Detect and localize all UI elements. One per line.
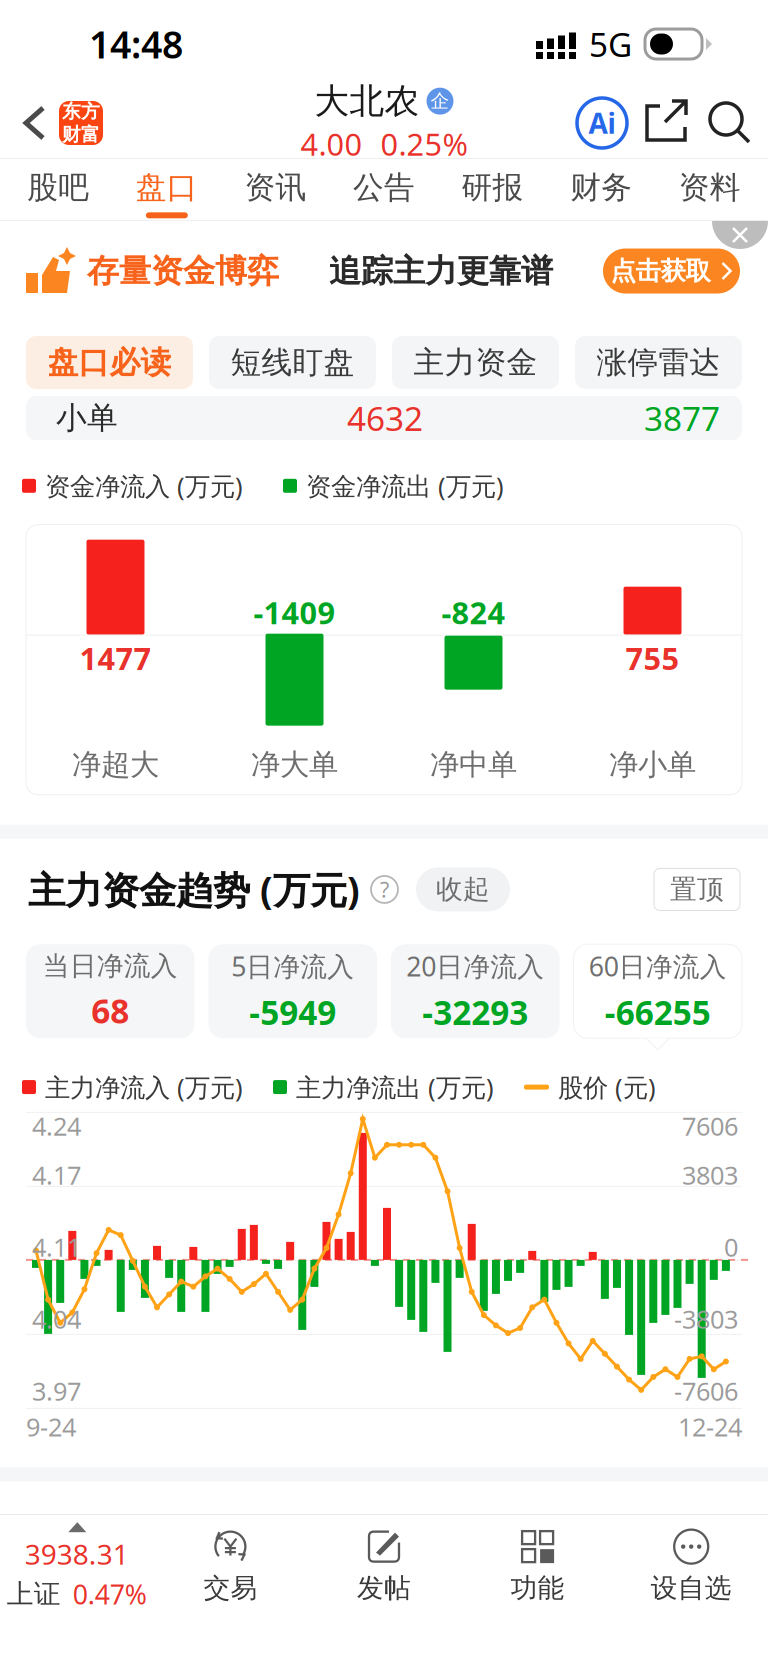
staticText: 5日净流入	[231, 948, 354, 984]
staticText: 股吧	[27, 169, 89, 206]
staticText: 上证	[7, 1578, 61, 1610]
staticText: -7606	[674, 1374, 738, 1408]
staticText: 0	[724, 1230, 738, 1264]
staticText: 盘口必读	[47, 344, 171, 381]
staticText: 9-24	[26, 1410, 76, 1443]
staticText: 财务	[570, 169, 632, 206]
button[interactable]: 短线盯盘	[209, 336, 376, 389]
staticText: 3877	[644, 396, 720, 440]
staticText: 4.04	[32, 1302, 81, 1336]
staticText: 小单	[56, 399, 118, 437]
staticText: 净中单	[430, 747, 517, 783]
staticText: 股价 (元)	[558, 1070, 656, 1104]
staticText: 4632	[347, 396, 423, 440]
button[interactable]: East Money	[59, 101, 103, 145]
staticText: 短线盯盘	[230, 344, 354, 381]
staticText: 0.25%	[380, 123, 467, 164]
staticText: 设自选	[651, 1572, 732, 1604]
staticText: 4.11	[32, 1230, 81, 1264]
staticText: 0.47%	[73, 1576, 147, 1612]
staticText: 7606	[682, 1109, 738, 1143]
staticText: 净大单	[251, 747, 338, 783]
button[interactable]: 涨停雷达	[575, 336, 742, 389]
staticText: -32293	[422, 990, 528, 1034]
staticText: ?	[380, 875, 389, 904]
staticText: -5949	[249, 990, 336, 1034]
button[interactable]: Share	[634, 88, 698, 158]
staticText: 主力资金	[413, 344, 537, 381]
staticText: Ai	[588, 104, 615, 142]
button[interactable]: 设自选	[614, 1515, 768, 1619]
staticText: -3803	[674, 1302, 738, 1336]
button[interactable]: Back	[0, 88, 59, 158]
button[interactable]: 功能	[461, 1515, 614, 1619]
button[interactable]: 财务	[547, 159, 655, 220]
staticText: 3.97	[32, 1374, 81, 1408]
button[interactable]: 研报	[438, 159, 547, 220]
button[interactable]: 5日净流入	[208, 944, 377, 1050]
staticText: 1477	[79, 638, 151, 678]
staticText: -1409	[253, 592, 335, 633]
button[interactable]: Close ad	[712, 221, 768, 249]
staticText: 功能	[511, 1572, 565, 1604]
staticText: 4.00	[300, 123, 362, 164]
staticText: 净小单	[609, 747, 696, 783]
button[interactable]: 收起	[416, 867, 510, 911]
button[interactable]: 交易	[154, 1515, 307, 1619]
button[interactable]: 置顶	[654, 868, 740, 910]
staticText: 涨停雷达	[596, 344, 720, 381]
button[interactable]: 存量资金博弈	[0, 221, 768, 321]
button[interactable]: 当日净流入	[26, 944, 194, 1050]
button[interactable]: 盘口	[113, 159, 221, 220]
staticText: 20日净流入	[406, 948, 544, 984]
button[interactable]: 资料	[655, 159, 764, 220]
button[interactable]: AI assistant	[570, 88, 634, 158]
button[interactable]: 主力资金	[392, 336, 559, 389]
staticText: 主力资金趋势 (万元)	[28, 865, 360, 914]
staticText: 资金净流入 (万元)	[45, 469, 243, 503]
staticText: 60日净流入	[589, 948, 727, 984]
staticText: 研报	[462, 169, 524, 206]
button[interactable]: 3938.31	[0, 1515, 154, 1619]
staticText: 企	[430, 90, 449, 113]
button[interactable]: 资讯	[221, 159, 330, 220]
staticText: 财富	[62, 123, 100, 146]
staticText: 14:48	[89, 19, 183, 69]
staticText: 资金净流出 (万元)	[306, 469, 504, 503]
staticText: 点击获取	[610, 255, 710, 286]
staticText: 盘口	[136, 169, 198, 206]
staticText: 当日净流入	[43, 950, 178, 982]
staticText: 4.24	[32, 1109, 81, 1143]
button[interactable]: 股吧	[4, 159, 113, 220]
staticText: 主力净流出 (万元)	[296, 1070, 494, 1104]
staticText: 东方	[62, 100, 100, 123]
staticText: 发帖	[357, 1572, 411, 1604]
staticText: 主力净流入 (万元)	[45, 1070, 243, 1104]
staticText: 追踪主力更靠谱	[329, 251, 553, 291]
staticText: -66255	[605, 990, 711, 1034]
staticText: 净超大	[72, 747, 159, 783]
staticText: 公告	[353, 169, 415, 206]
staticText: 交易	[203, 1572, 257, 1604]
staticText: 4.17	[32, 1158, 81, 1192]
staticText: 3803	[682, 1158, 738, 1192]
staticText: 资讯	[244, 169, 306, 206]
staticText: 12-24	[678, 1410, 742, 1443]
staticText: 资料	[679, 169, 741, 206]
staticText: 大北农	[314, 80, 419, 122]
button[interactable]: 盘口必读	[26, 336, 193, 389]
staticText: 收起	[436, 873, 490, 906]
button[interactable]: 20日净流入	[391, 944, 559, 1050]
staticText: 5G	[589, 22, 632, 66]
staticText: 置顶	[670, 873, 724, 906]
button[interactable]: Search	[698, 88, 762, 158]
staticText: 68	[91, 988, 129, 1033]
staticText: 存量资金博弈	[87, 251, 279, 291]
staticText: -824	[441, 592, 505, 633]
button[interactable]: 公告	[330, 159, 438, 220]
staticText: 755	[625, 638, 679, 678]
staticText: 3938.31	[25, 1535, 129, 1572]
button[interactable]: 60日净流入	[573, 944, 742, 1050]
button[interactable]: 发帖	[307, 1515, 461, 1619]
